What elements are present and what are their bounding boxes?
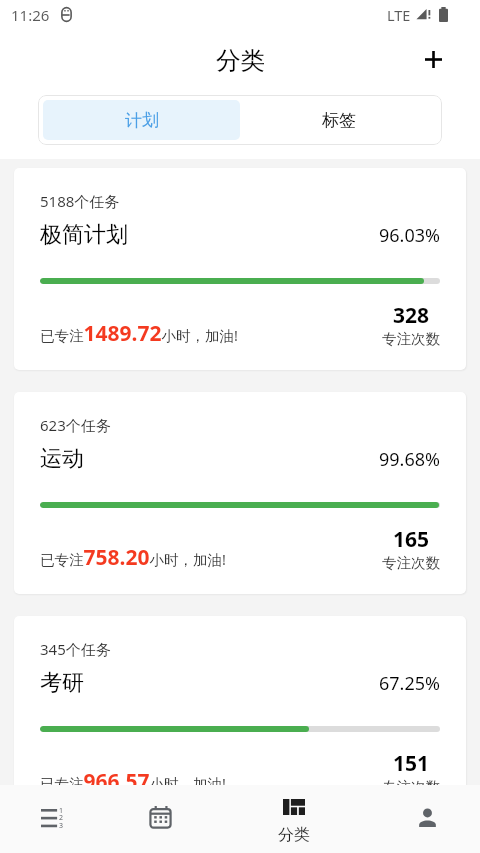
staticText: 96.03% (379, 223, 440, 248)
button[interactable]: 标签 (240, 100, 437, 140)
staticText: 标签 (322, 110, 356, 131)
staticText: 考研 (40, 669, 84, 697)
staticText: 5188个任务 (40, 191, 120, 211)
button[interactable]: 分类 (244, 799, 344, 853)
staticText: 328 (393, 301, 430, 330)
staticText: LTE (387, 5, 411, 25)
staticText: 专注次数 (382, 778, 440, 785)
staticText: 1 (59, 806, 64, 816)
staticText: 165 (393, 525, 430, 554)
staticText: 345个任务 (40, 639, 111, 659)
staticText: 11:26 (11, 5, 50, 25)
staticText: 67.25% (379, 671, 440, 696)
button[interactable]: 5188个任务 (14, 168, 466, 370)
button[interactable]: Tasks (7, 793, 97, 841)
staticText: 3 (59, 821, 64, 831)
staticText: 2 (59, 813, 64, 823)
button[interactable]: Calendar (115, 793, 205, 841)
staticText: 运动 (40, 445, 84, 473)
staticText: 专注次数 (382, 554, 440, 572)
staticText: 极简计划 (40, 221, 128, 249)
staticText: 计划 (125, 110, 159, 131)
staticText: 分类 (278, 825, 310, 845)
staticText: 已专注758.20小时，加油! (40, 543, 226, 572)
button[interactable]: 345个任务 (14, 616, 466, 785)
button[interactable]: Add (413, 39, 453, 79)
staticText: 99.68% (379, 447, 440, 472)
staticText: 623个任务 (40, 415, 111, 435)
staticText: 151 (393, 749, 430, 778)
button[interactable]: Profile (382, 793, 472, 841)
button[interactable]: 计划 (43, 100, 240, 140)
staticText: 已专注966.57小时，加油! (40, 767, 226, 785)
staticText: 专注次数 (382, 330, 440, 348)
staticText: 分类 (216, 45, 265, 76)
button[interactable]: 623个任务 (14, 392, 466, 594)
staticText: 已专注1489.72小时，加油! (40, 319, 238, 348)
